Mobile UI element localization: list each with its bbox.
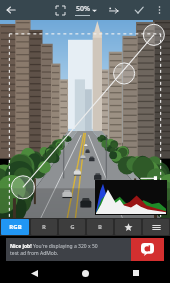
staticText: R [42,223,46,231]
button[interactable]: RGB [1,219,29,235]
button[interactable]: Menu [143,219,169,235]
staticText: You're displaying a 320 x 50 [33,243,98,250]
button[interactable]: G [59,219,85,235]
button[interactable]: Back [0,0,22,20]
button[interactable]: Photo editing canvas [0,20,170,218]
button[interactable]: Apply [129,0,149,20]
button[interactable]: Transform [105,0,123,20]
button[interactable]: R [31,219,57,235]
button[interactable]: Back [17,263,51,283]
button[interactable]: More options [151,0,167,20]
button[interactable]: Fit to screen [51,0,69,20]
button[interactable]: Histogram [95,180,167,215]
button[interactable]: Home [68,263,102,283]
button[interactable]: Advertisement [6,238,164,261]
button[interactable]: Recent apps [119,263,153,283]
staticText: RGB [9,223,22,231]
staticText: 50% [76,4,90,14]
staticText: Nice job! [10,243,33,250]
staticText: test ad from AdMob. [10,250,59,257]
button[interactable]: Favorites [115,219,141,235]
button[interactable]: B [87,219,113,235]
staticText: G [70,223,75,231]
button[interactable]: 50% [75,0,97,20]
staticText: B [98,223,102,231]
